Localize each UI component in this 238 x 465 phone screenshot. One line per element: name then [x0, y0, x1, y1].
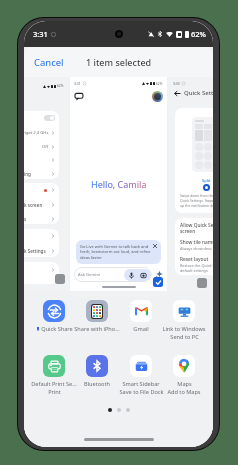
staticText: Off — [42, 144, 49, 150]
button[interactable]: Bluetooth — [71, 355, 123, 388]
staticText: Maps — [177, 380, 192, 388]
staticText: Restore the Quick S default settings — [180, 263, 213, 273]
staticText: 3:33 — [173, 81, 180, 86]
button[interactable]: 62% — [24, 77, 68, 291]
staticText: ing — [24, 171, 31, 177]
other: Quick Share — [43, 300, 65, 322]
staticText: Split — [202, 178, 211, 183]
button[interactable]: 3:33 — [169, 77, 213, 291]
staticText: Gmail — [133, 325, 149, 333]
other: Selected — [153, 277, 163, 287]
button[interactable]: Default Print Se... — [28, 355, 80, 396]
staticText: Link to Windows — [162, 325, 206, 333]
staticText: k screen — [24, 202, 43, 208]
staticText: 62% — [156, 82, 163, 86]
staticText: Default Print Se... — [31, 380, 77, 388]
staticText: Print — [48, 388, 61, 396]
staticText: 62% — [57, 84, 64, 88]
staticText: Reset layout — [180, 256, 209, 263]
staticText: Navigat 2,4 GHz — [24, 130, 49, 136]
staticText: Hello, Camila — [91, 178, 147, 190]
staticText: Bluetooth — [84, 380, 110, 388]
staticText: Share with iPho... — [74, 325, 120, 333]
staticText: Swipe down from the t Quick Settings. Sw… — [180, 193, 213, 208]
staticText: 1 item selected — [86, 56, 152, 68]
staticText: Quick Share — [41, 325, 73, 333]
button[interactable]: Smart Sidebar — [115, 355, 167, 396]
staticText: Save to File Dock — [119, 388, 164, 396]
button[interactable]: Cancel — [24, 50, 74, 75]
button[interactable]: Quick Share — [28, 300, 80, 333]
other: Smart Sidebar — [130, 355, 152, 377]
staticText: s — [24, 216, 27, 222]
staticText: Add to Maps — [167, 388, 201, 396]
staticText: Go Live with Gemini to talk back and for… — [80, 244, 151, 260]
staticText: 62% — [191, 29, 206, 39]
button[interactable]: Share with iPho... — [71, 300, 123, 333]
staticText: Smart Sidebar — [122, 380, 160, 388]
other: Maps — [173, 355, 195, 377]
button[interactable]: Link to Windows — [158, 300, 210, 341]
staticText: Always show desc — [180, 246, 212, 251]
button[interactable]: Maps — [158, 355, 210, 396]
button[interactable]: Gmail — [115, 300, 167, 333]
staticText: 3:31 — [33, 29, 48, 39]
staticText: Send to PC — [170, 333, 199, 341]
staticText: Allow Quick Setti screen — [180, 222, 213, 234]
staticText: Show tile names — [180, 239, 213, 246]
staticText: k Settings — [24, 248, 46, 254]
button[interactable]: 3:31 — [70, 77, 167, 291]
staticText: Ask Gemini — [78, 272, 101, 278]
staticText: Quick Settin — [184, 89, 213, 97]
staticText: 3:31 — [74, 81, 81, 86]
button[interactable]: Ask Gemini — [74, 267, 152, 282]
